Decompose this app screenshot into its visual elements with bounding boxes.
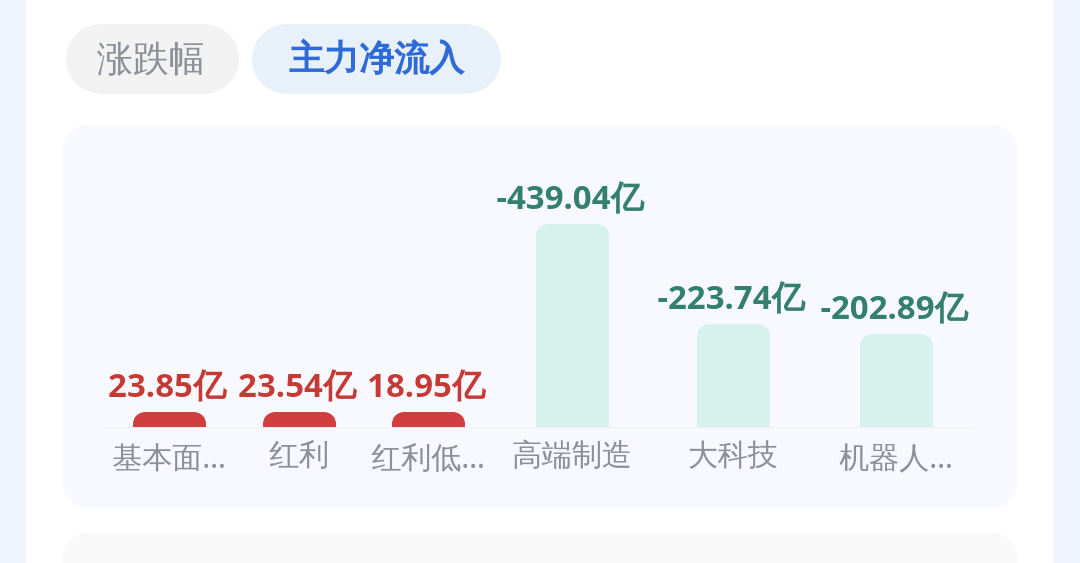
- staticText: 大科技: [688, 436, 778, 474]
- staticText: 涨跌幅: [97, 36, 205, 81]
- staticText: -439.04亿: [496, 174, 644, 219]
- button[interactable]: 红利 23.54亿: [263, 412, 336, 427]
- staticText: 基本面…: [112, 436, 226, 477]
- staticText: 23.85亿: [108, 362, 226, 407]
- staticText: 主力净流入: [289, 36, 464, 80]
- staticText: 红利低…: [371, 436, 485, 477]
- staticText: 机器人…: [839, 436, 953, 477]
- staticText: 红利: [269, 436, 329, 474]
- staticText: 高端制造: [512, 436, 632, 474]
- staticText: -202.89亿: [820, 284, 968, 329]
- button[interactable]: 红利低… 18.95亿: [392, 412, 465, 427]
- staticText: -223.74亿: [657, 274, 805, 319]
- button[interactable]: 涨跌幅: [66, 24, 239, 94]
- staticText: 23.54亿: [238, 362, 356, 407]
- button[interactable]: 机器人… -202.89亿: [860, 334, 933, 427]
- button[interactable]: 主力净流入: [252, 24, 501, 94]
- staticText: 18.95亿: [367, 362, 485, 407]
- button[interactable]: 基本面… 23.85亿: [133, 412, 206, 427]
